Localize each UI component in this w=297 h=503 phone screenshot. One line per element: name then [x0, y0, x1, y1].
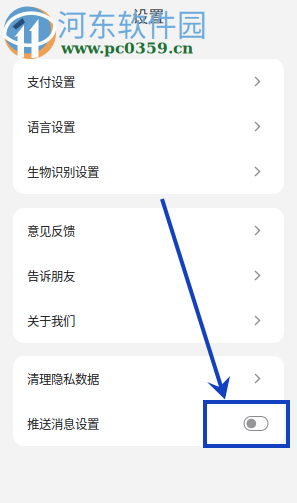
staticText: 支付设置	[27, 72, 75, 90]
button[interactable]: 语言设置	[13, 104, 284, 149]
staticText: 意见反馈	[27, 221, 75, 239]
button[interactable]: 支付设置	[13, 59, 284, 104]
button[interactable]: 推送消息设置	[13, 401, 284, 446]
button[interactable]: 设置	[0, 0, 297, 31]
staticText: 清理隐私数据	[27, 369, 99, 387]
button[interactable]: 意见反馈	[13, 208, 284, 253]
button[interactable]: 告诉朋友	[13, 253, 284, 298]
staticText: 设置	[132, 4, 164, 27]
staticText: 河东软件园	[57, 1, 207, 44]
staticText: 生物识别设置	[27, 162, 99, 180]
staticText: 告诉朋友	[27, 266, 75, 284]
staticText: 推送消息设置	[27, 414, 99, 432]
staticText: 语言设置	[27, 117, 75, 135]
staticText: 关于我们	[27, 311, 75, 329]
button[interactable]: 生物识别设置	[13, 149, 284, 194]
button[interactable]: 关于我们	[13, 298, 284, 343]
staticText: www.pc0359.cn	[61, 39, 193, 57]
button[interactable]: 清理隐私数据	[13, 356, 284, 401]
